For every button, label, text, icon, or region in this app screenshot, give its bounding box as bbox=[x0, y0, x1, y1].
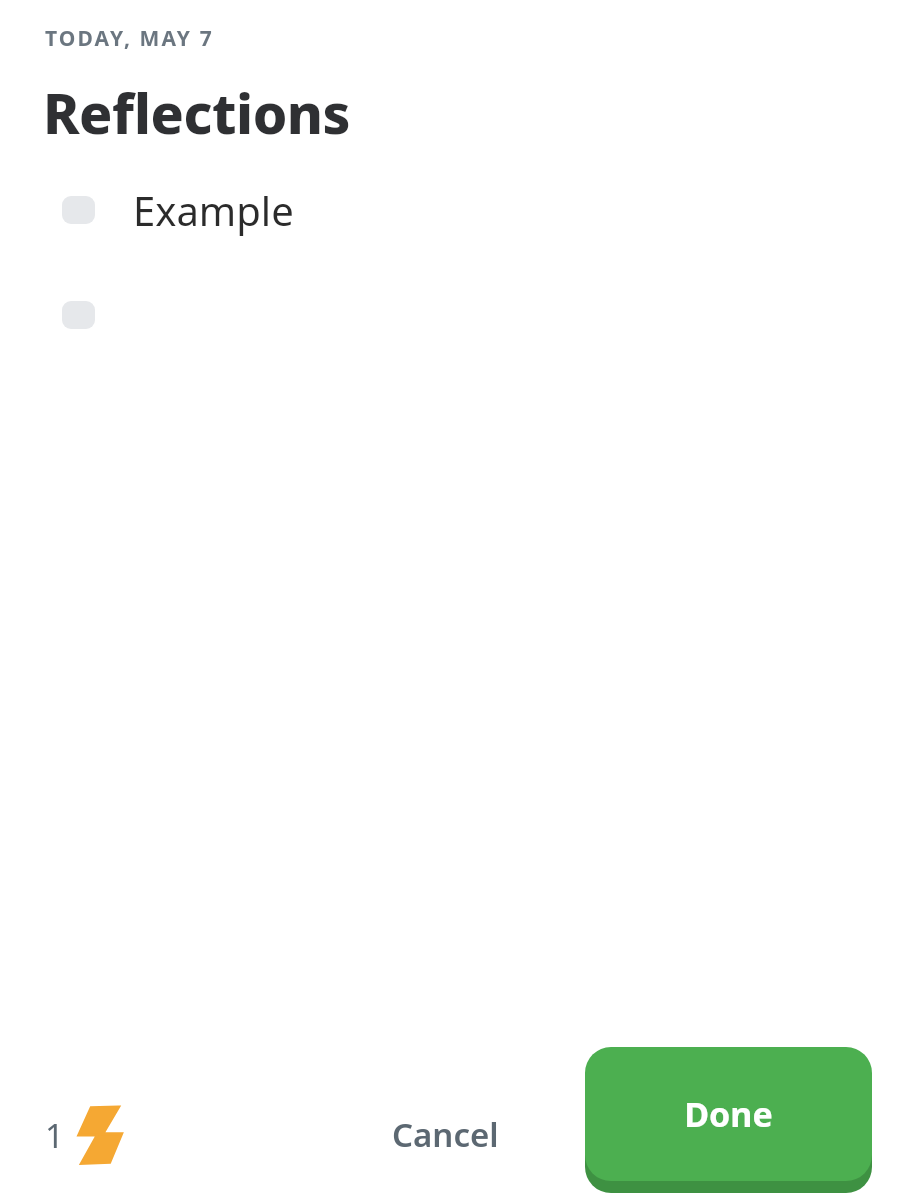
other: Streak bbox=[78, 1106, 122, 1164]
staticText: Cancel bbox=[392, 1112, 499, 1157]
button[interactable]: Toggle reflection bbox=[0, 181, 918, 239]
staticText: Reflections bbox=[43, 75, 351, 150]
button[interactable]: Done bbox=[585, 1047, 872, 1193]
staticText: TODAY, MAY 7 bbox=[45, 24, 214, 53]
button[interactable]: 1 bbox=[41, 1102, 126, 1168]
staticText: Example bbox=[133, 183, 294, 237]
button[interactable]: Cancel bbox=[372, 1098, 519, 1171]
other: Toggle reflection bbox=[62, 196, 95, 224]
staticText: Done bbox=[684, 1091, 773, 1137]
button[interactable]: Toggle reflection bbox=[0, 299, 918, 331]
other: Toggle reflection bbox=[62, 301, 95, 329]
staticText: 1 bbox=[45, 1113, 64, 1158]
